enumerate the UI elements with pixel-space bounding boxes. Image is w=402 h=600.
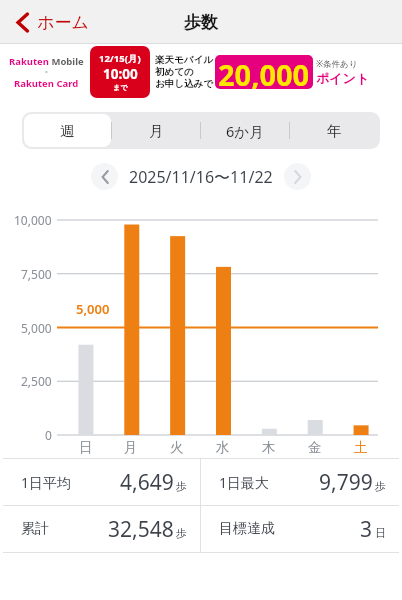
button[interactable]: 1日最大 [201,459,399,505]
staticText: まで [113,83,128,92]
staticText: 年 [327,122,342,140]
staticText: 7,500 [21,266,52,282]
staticText: 10,000 [14,212,52,228]
staticText: Mobile [49,55,84,68]
staticText: 1日最大 [219,473,270,492]
button[interactable]: 週 [24,114,111,147]
staticText: Rakuten [9,55,49,68]
staticText: 累計 [21,520,49,538]
staticText: 20,000 [218,55,310,89]
staticText: 月 [124,439,138,456]
button[interactable]: 1日平均 [3,459,200,505]
staticText: 月 [149,122,164,140]
staticText: 初めての [155,66,194,78]
button[interactable]: 年 [290,114,378,147]
button[interactable]: Next period [284,163,311,190]
staticText: 1日平均 [21,473,72,492]
staticText: 0 [45,427,52,443]
staticText: 目標達成 [219,520,275,538]
staticText: 歩 [375,479,386,493]
staticText: × [45,69,48,76]
staticText: 水 [216,439,230,456]
staticText: ホーム [37,12,89,33]
staticText: 32,548 [108,515,174,544]
staticText: 木 [262,439,276,456]
staticText: 2025/11/16〜11/22 [129,166,273,188]
staticText: 金 [308,439,322,456]
staticText: 5,000 [76,300,110,318]
staticText: 4,649 [120,468,174,497]
staticText: ポイント [316,70,370,86]
staticText: 火 [170,439,184,456]
button[interactable]: Previous period [91,163,118,190]
staticText: ※条件あり [316,58,358,70]
button[interactable]: 累計 [3,506,200,552]
staticText: 歩 [176,526,187,540]
staticText: 楽天モバイル [155,54,213,66]
staticText: 土 [354,439,368,456]
staticText: 2,500 [21,373,52,389]
button[interactable]: ホーム [0,7,103,38]
staticText: 日 [79,439,93,456]
button[interactable]: 6か月 [201,114,289,147]
button[interactable]: Rakuten [0,44,402,100]
staticText: 3 [360,515,373,544]
staticText: 10:00 [103,65,138,83]
staticText: 歩 [176,479,187,493]
button[interactable]: 目標達成 [201,506,399,552]
staticText: 5,000 [21,320,52,336]
staticText: 歩数 [184,12,218,33]
staticText: 日 [375,526,386,540]
staticText: 週 [60,122,75,140]
button[interactable]: 月 [112,114,200,147]
staticText: 12/15(月) [99,52,141,65]
staticText: 9,799 [319,468,373,497]
staticText: 6か月 [226,121,264,141]
staticText: お申し込みで [155,78,213,90]
staticText: Rakuten Card [14,77,79,90]
